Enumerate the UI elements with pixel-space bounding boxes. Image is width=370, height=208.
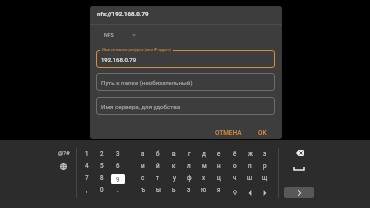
staticText: NFS <box>104 32 114 38</box>
button[interactable]: у <box>167 172 181 183</box>
staticText: к <box>172 162 176 169</box>
button[interactable]: Shift <box>228 187 242 198</box>
button[interactable]: 0 <box>95 184 109 195</box>
button[interactable]: 3 <box>111 148 125 159</box>
button[interactable]: л <box>182 160 196 171</box>
button[interactable]: 9 <box>111 174 125 184</box>
button[interactable]: Space <box>290 162 307 174</box>
button[interactable]: щ <box>258 172 272 183</box>
button[interactable]: а <box>136 148 150 159</box>
staticText: р <box>263 162 267 169</box>
button[interactable]: OK <box>253 126 272 139</box>
staticText: й <box>156 162 160 169</box>
button[interactable]: ы <box>151 184 165 195</box>
button[interactable]: я <box>212 184 226 195</box>
staticText: м <box>202 162 207 169</box>
button[interactable]: н <box>212 160 226 171</box>
staticText: 0 <box>100 186 104 193</box>
button[interactable]: ю <box>197 184 211 195</box>
button[interactable]: , <box>80 184 94 195</box>
staticText: ё <box>233 150 237 157</box>
staticText: , <box>86 186 88 193</box>
staticText: ч <box>233 174 237 181</box>
button[interactable]: 4 <box>80 160 94 171</box>
staticText: з <box>263 150 267 157</box>
staticText: @?# <box>58 150 70 157</box>
staticText: Имя сервера, для удобства <box>101 103 181 110</box>
button[interactable]: 192.168.0.79 <box>96 50 275 68</box>
button[interactable]: п <box>243 160 257 171</box>
staticText: о <box>233 162 237 169</box>
button[interactable]: Имя сервера, для удобства <box>96 97 275 115</box>
staticText: с <box>141 174 145 181</box>
staticText: nfs://192.168.0.79 <box>97 10 149 17</box>
button[interactable]: м <box>197 160 211 171</box>
staticText: я <box>217 186 221 193</box>
staticText: ш <box>247 174 253 181</box>
button[interactable]: г <box>182 148 196 159</box>
button[interactable]: с <box>136 172 150 183</box>
staticText: Путь к папке (необязательный) <box>101 79 193 86</box>
button[interactable]: 2 <box>95 148 109 159</box>
staticText: 192.168.0.79 <box>101 56 137 63</box>
button[interactable]: т <box>151 172 165 183</box>
staticText: ь <box>172 186 176 193</box>
staticText: ОТМЕНА <box>215 129 242 137</box>
button[interactable]: д <box>197 148 211 159</box>
button[interactable]: й <box>151 160 165 171</box>
staticText: щ <box>262 174 268 181</box>
button[interactable]: 5 <box>95 160 109 171</box>
staticText: т <box>156 174 160 181</box>
button[interactable]: Путь к папке (необязательный) <box>96 73 275 91</box>
staticText: OK <box>258 129 267 137</box>
staticText: у <box>173 174 176 181</box>
staticText: ю <box>201 186 207 193</box>
staticText: 9 <box>116 176 120 183</box>
button[interactable]: э <box>182 184 196 195</box>
button[interactable]: ч <box>228 172 242 183</box>
button[interactable]: Change keyboard language <box>55 160 72 172</box>
button[interactable]: 8 <box>95 172 109 183</box>
staticText: и <box>141 162 145 169</box>
button[interactable]: Next <box>284 187 314 198</box>
staticText: г <box>188 150 191 157</box>
button[interactable]: Move cursor left <box>243 187 257 198</box>
button[interactable]: NFS <box>104 30 136 40</box>
button[interactable]: р <box>258 160 272 171</box>
staticText: 5 <box>100 162 104 169</box>
staticText: ц <box>217 174 221 181</box>
staticText: 6 <box>116 162 120 169</box>
button[interactable]: 1 <box>80 148 94 159</box>
button[interactable]: х <box>197 172 211 183</box>
button[interactable]: е <box>212 148 226 159</box>
button[interactable]: з <box>258 148 272 159</box>
staticText: ъ <box>141 186 145 193</box>
button[interactable]: ф <box>182 172 196 183</box>
staticText: ы <box>156 186 161 193</box>
staticText: 3 <box>116 150 120 157</box>
button[interactable]: Backspace <box>291 147 308 159</box>
button[interactable]: ц <box>212 172 226 183</box>
button[interactable]: ОТМЕНА <box>210 126 247 139</box>
button[interactable]: ё <box>228 148 242 159</box>
button[interactable]: @?# <box>55 148 72 159</box>
button[interactable]: ш <box>243 172 257 183</box>
button[interactable]: в <box>167 148 181 159</box>
button[interactable]: ъ <box>136 184 150 195</box>
button[interactable]: о <box>228 160 242 171</box>
button[interactable]: ж <box>243 148 257 159</box>
staticText: Имя сетевого ресурса (или IP-адрес) <box>102 47 171 52</box>
button[interactable]: 6 <box>111 160 125 171</box>
staticText: л <box>187 162 191 169</box>
staticText: д <box>202 150 206 157</box>
button[interactable]: б <box>151 148 165 159</box>
button[interactable]: к <box>167 160 181 171</box>
button[interactable]: и <box>136 160 150 171</box>
button[interactable]: ь <box>167 184 181 195</box>
staticText: 1 <box>85 150 89 157</box>
button[interactable]: . <box>111 184 125 195</box>
staticText: . <box>117 186 119 193</box>
button[interactable]: 7 <box>80 172 94 183</box>
button[interactable]: Move cursor right <box>258 187 272 198</box>
staticText: ф <box>187 174 192 181</box>
